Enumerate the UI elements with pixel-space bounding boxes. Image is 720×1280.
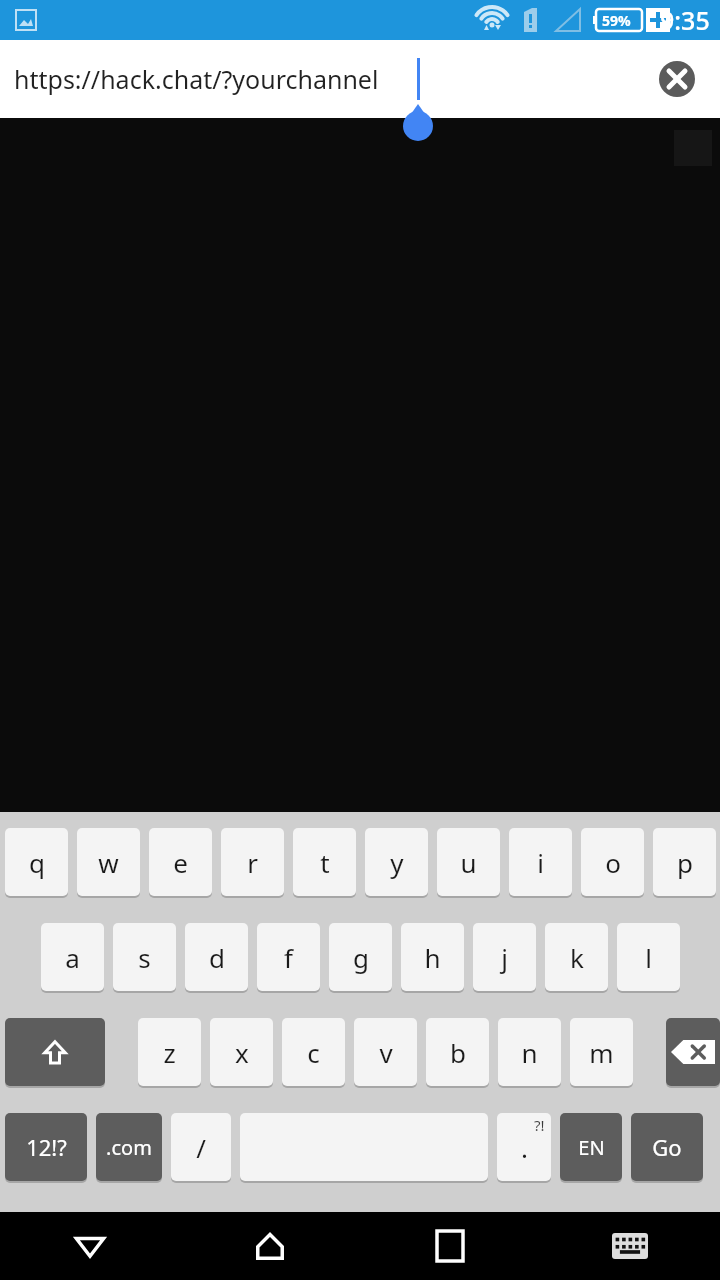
staticText: n [521, 1035, 538, 1070]
staticText: c [307, 1035, 320, 1070]
staticText: f [284, 940, 293, 975]
button[interactable]: a [41, 923, 104, 991]
staticText: y [390, 845, 404, 880]
button[interactable]: Back [0, 1212, 180, 1280]
button[interactable]: b [426, 1018, 489, 1086]
button[interactable]: p [653, 828, 716, 896]
button[interactable]: o [581, 828, 644, 896]
button[interactable]: 12!? [5, 1113, 87, 1181]
button[interactable]: / [171, 1113, 231, 1181]
button[interactable]: c [282, 1018, 345, 1086]
staticText: w [98, 845, 119, 880]
button[interactable]: e [149, 828, 212, 896]
button[interactable]: t [293, 828, 356, 896]
staticText: b [450, 1035, 466, 1070]
button[interactable]: x [210, 1018, 273, 1086]
staticText: . [521, 1130, 528, 1165]
staticText: t [320, 845, 330, 880]
button[interactable]: j [473, 923, 536, 991]
staticText: i [537, 845, 544, 880]
other: Shift [5, 1018, 105, 1086]
staticText: p [677, 845, 693, 880]
button[interactable]: n [498, 1018, 561, 1086]
button[interactable]: Home [180, 1212, 360, 1280]
staticText: Go [652, 1132, 682, 1162]
button[interactable]: u [437, 828, 500, 896]
button[interactable]: Go [631, 1113, 703, 1181]
button[interactable]: Clear text [659, 61, 695, 97]
staticText: q [29, 845, 45, 880]
staticText: k [570, 940, 584, 975]
staticText: d [209, 940, 225, 975]
staticText: m [589, 1035, 614, 1070]
button[interactable]: f [257, 923, 320, 991]
staticText: g [353, 940, 369, 975]
button[interactable]: w [77, 828, 140, 896]
staticText: .com [106, 1134, 152, 1161]
button[interactable]: g [329, 923, 392, 991]
button[interactable]: Switch keyboard [540, 1212, 720, 1280]
button[interactable]: . [497, 1113, 551, 1181]
button[interactable]: h [401, 923, 464, 991]
button[interactable]: https://hack.chat/?yourchannel [0, 40, 720, 118]
staticText: EN [578, 1134, 605, 1161]
staticText: j [501, 940, 508, 975]
button[interactable] [5, 1018, 105, 1086]
button[interactable]: .com [96, 1113, 162, 1181]
staticText: l [645, 940, 652, 975]
staticText: h [424, 940, 441, 975]
staticText: o [605, 845, 621, 880]
staticText: 9:35 [660, 3, 710, 37]
staticText: v [379, 1035, 393, 1070]
staticText: e [173, 845, 188, 880]
button[interactable]: i [509, 828, 572, 896]
staticText: r [247, 845, 258, 880]
staticText: 12!? [26, 1132, 67, 1162]
button[interactable]: v [354, 1018, 417, 1086]
staticText: / [196, 1130, 206, 1165]
button[interactable] [666, 1018, 720, 1086]
button[interactable]: y [365, 828, 428, 896]
staticText: x [235, 1035, 249, 1070]
staticText: s [138, 940, 151, 975]
button[interactable]: Recent apps [360, 1212, 540, 1280]
staticText: z [163, 1035, 176, 1070]
button[interactable]: z [138, 1018, 201, 1086]
button[interactable]: k [545, 923, 608, 991]
button[interactable]: l [617, 923, 680, 991]
button[interactable]: s [113, 923, 176, 991]
button[interactable]: r [221, 828, 284, 896]
other: Backspace [666, 1018, 720, 1086]
staticText: ?! [534, 1115, 545, 1135]
button[interactable]: d [185, 923, 248, 991]
button[interactable]: EN [560, 1113, 622, 1181]
staticText: https://hack.chat/?yourchannel [14, 62, 379, 96]
staticText: u [460, 845, 477, 880]
button[interactable]: q [5, 828, 68, 896]
staticText: 59% [602, 11, 631, 30]
staticText: a [65, 940, 80, 975]
button[interactable]: m [570, 1018, 633, 1086]
